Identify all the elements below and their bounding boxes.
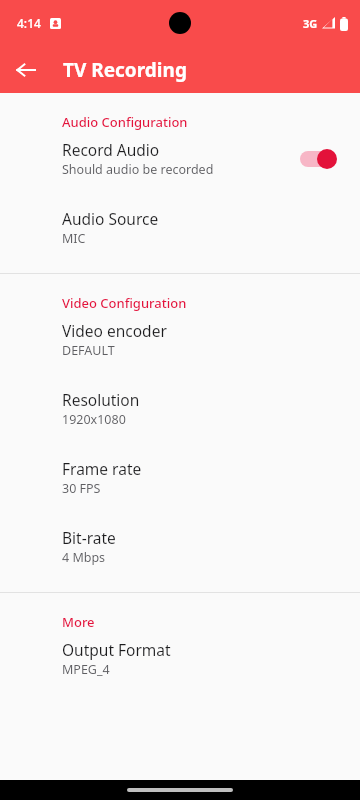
button[interactable]: Video encoder: [0, 314, 360, 363]
staticText: MIC: [62, 230, 86, 247]
staticText: Audio Configuration: [62, 113, 360, 131]
staticText: Frame rate: [62, 458, 142, 479]
button[interactable]: Bit-rate: [0, 521, 360, 570]
staticText: Video Configuration: [62, 294, 360, 312]
staticText: Audio Source: [62, 208, 159, 229]
staticText: 4 Mbps: [62, 549, 106, 566]
button[interactable]: Record Audio toggle: [298, 144, 344, 174]
staticText: MPEG_4: [62, 661, 110, 678]
button[interactable]: Back: [8, 52, 44, 88]
button[interactable]: Output Format: [0, 633, 360, 682]
button[interactable]: Frame rate: [0, 452, 360, 501]
staticText: 30 FPS: [62, 480, 101, 497]
staticText: 4:14: [17, 15, 41, 31]
staticText: Bit-rate: [62, 527, 116, 548]
staticText: 3G: [303, 16, 318, 31]
button[interactable]: Record Audio: [0, 133, 360, 182]
staticText: Resolution: [62, 389, 140, 410]
staticText: 1920x1080: [62, 411, 126, 428]
staticText: TV Recording: [63, 57, 187, 83]
button[interactable]: Audio Source: [0, 202, 360, 251]
staticText: More: [62, 613, 360, 631]
staticText: Video encoder: [62, 320, 167, 341]
staticText: Should audio be recorded: [62, 161, 214, 178]
staticText: Record Audio: [62, 139, 160, 160]
staticText: Output Format: [62, 639, 171, 660]
button[interactable]: Resolution: [0, 383, 360, 432]
staticText: DEFAULT: [62, 342, 115, 359]
